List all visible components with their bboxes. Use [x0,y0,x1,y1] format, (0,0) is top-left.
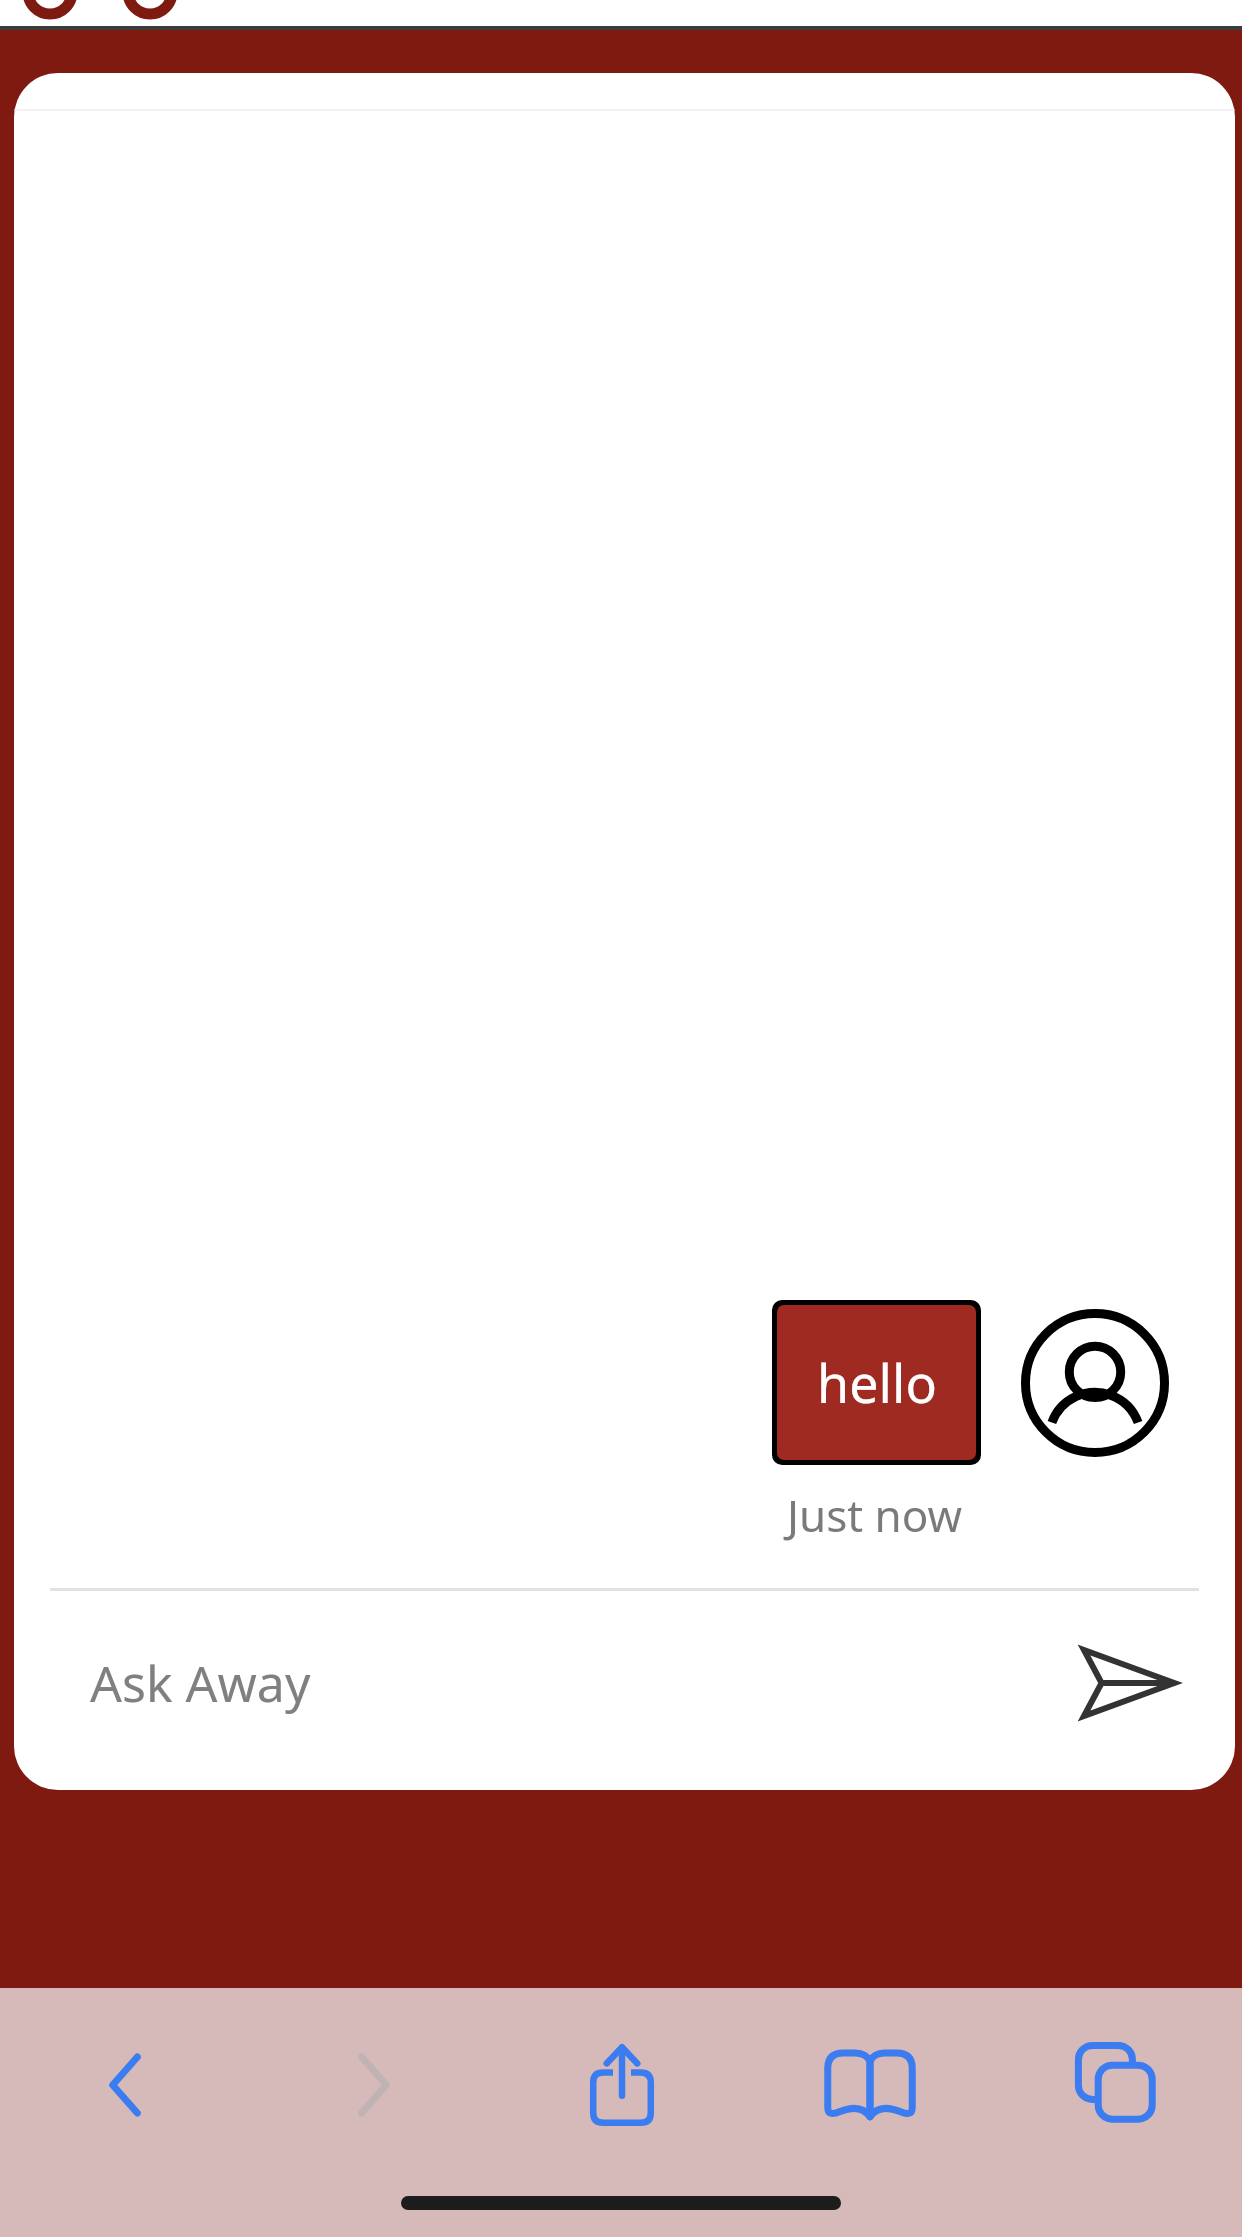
button[interactable]: Share [498,2030,746,2140]
button[interactable]: Tabs [994,2030,1242,2140]
staticText: Ask Away [90,1649,311,1717]
button[interactable]: Back [0,2030,249,2140]
staticText: Just now [787,1485,963,1545]
button[interactable]: Ask Away [14,1613,1235,1753]
staticText: hello [817,1347,937,1418]
button[interactable]: Bookmarks [746,2030,994,2140]
button[interactable]: User avatar [1015,1303,1175,1463]
button[interactable]: hello [777,1305,976,1460]
button[interactable]: Send [1073,1628,1183,1738]
button[interactable]: Forward [249,2030,498,2140]
